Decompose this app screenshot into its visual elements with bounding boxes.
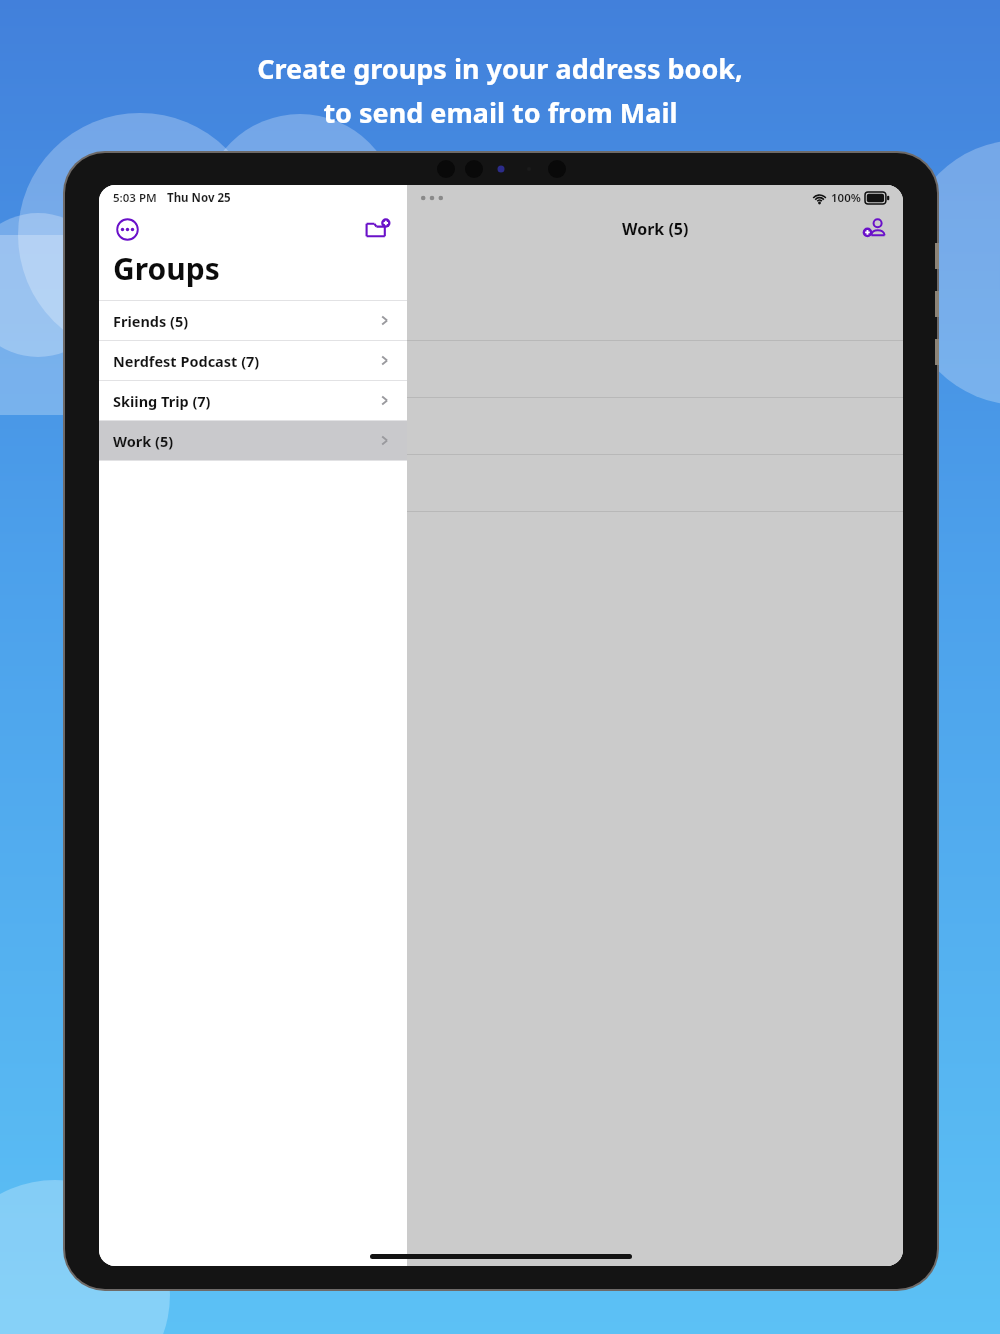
staticText: to send email to from Mail xyxy=(323,94,678,131)
staticText: Skiing Trip (7) xyxy=(113,391,211,411)
staticText: Work (5) xyxy=(113,431,174,451)
staticText: Thu Nov 25 xyxy=(167,190,231,206)
button[interactable]: More options xyxy=(112,214,142,244)
staticText: Nerdfest Podcast (7) xyxy=(113,351,260,371)
staticText: Create groups in your address book, xyxy=(257,50,743,87)
button[interactable]: Nerdfest Podcast (7) xyxy=(99,341,407,380)
staticText: Friends (5) xyxy=(113,311,189,331)
button[interactable]: Add contact xyxy=(858,212,892,246)
staticText: Groups xyxy=(113,248,220,289)
button[interactable]: Friends (5) xyxy=(99,301,407,340)
button[interactable]: Work (5) xyxy=(99,421,407,460)
button[interactable]: New group xyxy=(360,212,394,246)
staticText: 100% xyxy=(831,190,861,206)
staticText: Work (5) xyxy=(622,218,689,240)
button[interactable]: Skiing Trip (7) xyxy=(99,381,407,420)
staticText: 5:03 PM xyxy=(113,190,157,206)
